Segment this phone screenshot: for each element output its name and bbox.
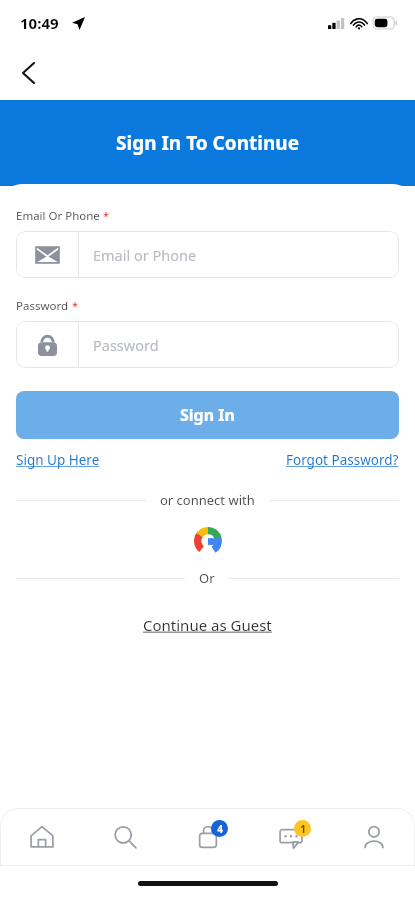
staticText: Sign In To Continue: [116, 130, 299, 156]
button[interactable]: Back: [6, 51, 50, 95]
button[interactable]: Continue as Guest: [139, 611, 276, 639]
staticText: Forgot Password?: [286, 451, 399, 469]
staticText: Continue as Guest: [143, 615, 272, 635]
staticText: Sign In: [180, 404, 235, 426]
staticText: *: [103, 208, 110, 223]
button[interactable]: Password: [16, 321, 399, 368]
staticText: Sign Up Here: [16, 451, 100, 469]
staticText: *: [72, 298, 79, 313]
staticText: Password: [16, 298, 69, 314]
staticText: Email Or Phone: [16, 208, 100, 224]
staticText: 4: [217, 822, 223, 836]
staticText: 10:49: [20, 13, 59, 33]
staticText: Email or Phone: [93, 245, 197, 265]
button[interactable]: Profile: [332, 808, 415, 866]
staticText: Or: [199, 569, 215, 587]
button[interactable]: Sign in with Google: [188, 521, 228, 561]
staticText: 1: [300, 822, 306, 836]
button[interactable]: Search: [83, 808, 166, 866]
staticText: or connect with: [160, 491, 255, 509]
button[interactable]: Forgot Password?: [286, 451, 399, 469]
button[interactable]: Sign Up Here: [16, 451, 100, 469]
staticText: Password: [93, 335, 159, 355]
button[interactable]: Cart, 4 items: [166, 808, 249, 866]
button[interactable]: Messages, 1 unread: [249, 808, 332, 866]
button[interactable]: Home: [0, 808, 83, 866]
button[interactable]: Sign In: [16, 391, 399, 439]
button[interactable]: Email or Phone: [16, 231, 399, 278]
